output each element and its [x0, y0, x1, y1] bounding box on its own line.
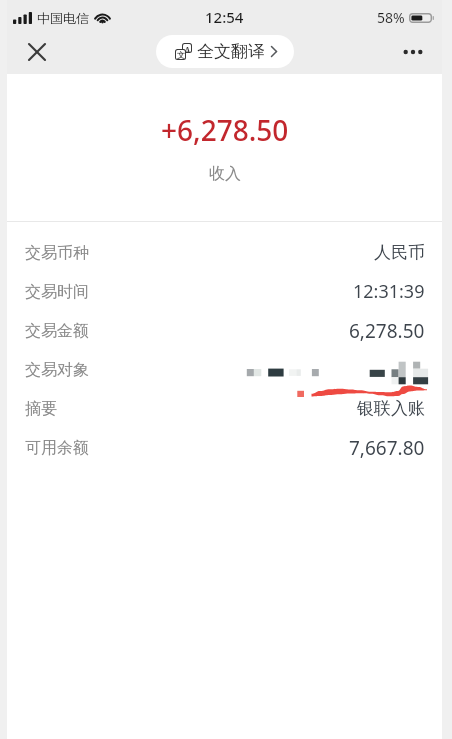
staticText: A	[184, 44, 191, 52]
staticText: 6,278.50	[349, 318, 425, 344]
staticText: 7,667.80	[349, 435, 425, 461]
button[interactable]: 交易对象	[7, 350, 442, 389]
button[interactable]: 摘要	[7, 389, 442, 428]
button[interactable]: 交易时间	[7, 272, 442, 311]
staticText: 12:31:39	[353, 279, 425, 304]
button[interactable]: 可用余额	[7, 428, 442, 467]
staticText: 58%	[377, 8, 405, 27]
button[interactable]: 交易金额	[7, 311, 442, 350]
staticText: +6,278.50	[161, 111, 289, 149]
staticText: 12:54	[205, 7, 244, 27]
staticText: 人民币	[374, 242, 425, 263]
staticText: 全文翻译	[197, 41, 265, 62]
staticText: 摘要	[25, 399, 57, 419]
staticText: 交易时间	[25, 282, 89, 302]
button[interactable]: More options	[393, 32, 433, 72]
staticText: 文	[177, 50, 185, 59]
button[interactable]: A	[156, 35, 294, 68]
staticText: 交易币种	[25, 243, 89, 263]
staticText: 交易对象	[25, 360, 89, 380]
staticText: 可用余额	[25, 438, 89, 458]
staticText: 银联入账	[357, 398, 425, 419]
staticText: 收入	[209, 164, 241, 184]
staticText: 交易金额	[25, 321, 89, 341]
button[interactable]: 交易币种	[7, 233, 442, 272]
button[interactable]: Close	[17, 32, 57, 72]
staticText: 中国电信	[37, 10, 89, 26]
